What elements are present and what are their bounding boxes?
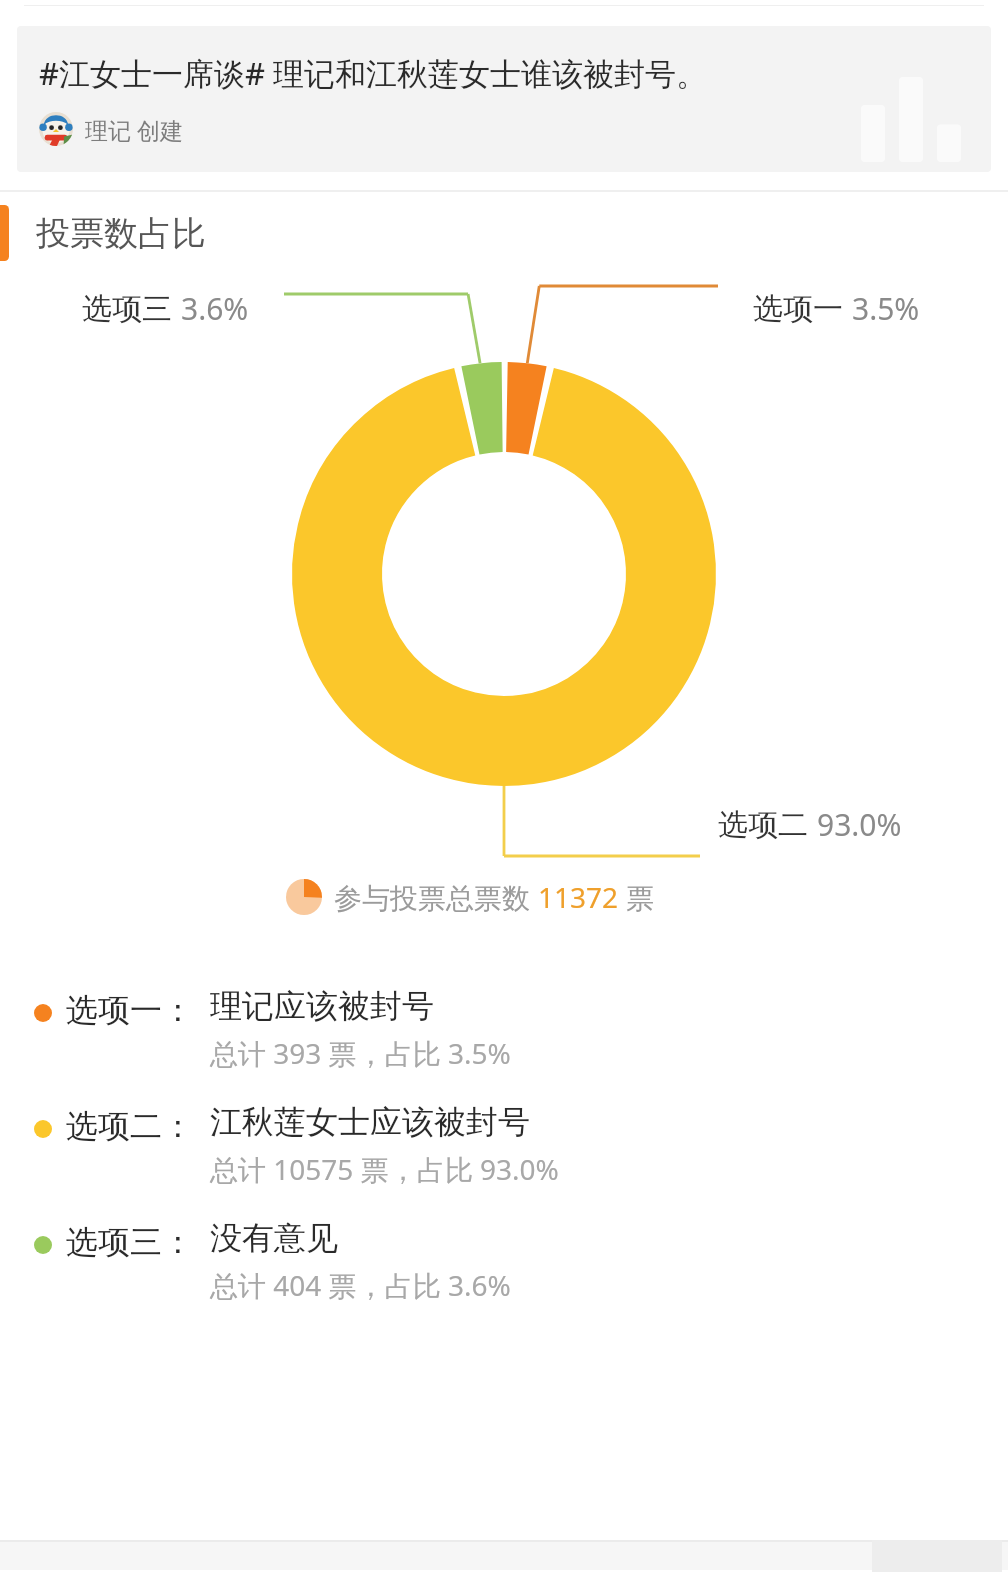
staticText: 总计 404 票，占比 3.6% bbox=[210, 1266, 511, 1304]
staticText: 选项三： bbox=[66, 1222, 194, 1262]
button[interactable]: 选项三： bbox=[0, 1214, 1008, 1308]
staticText: 选项三 bbox=[82, 290, 172, 328]
staticText: 选项二： bbox=[66, 1106, 194, 1146]
staticText: 投票数占比 bbox=[36, 212, 206, 255]
button[interactable]: Total votes bbox=[286, 878, 655, 916]
staticText: 选项一： bbox=[66, 990, 194, 1030]
button[interactable]: #江女士一席谈# 理记和江秋莲女士谁该被封号。 bbox=[17, 26, 991, 172]
staticText: #江女士一席谈# 理记和江秋莲女士谁该被封号。 bbox=[39, 52, 876, 94]
staticText: 11372 bbox=[538, 878, 619, 916]
staticText: 理记应该被封号 bbox=[210, 986, 434, 1026]
staticText: 理记 创建 bbox=[85, 114, 183, 145]
staticText: 选项一 bbox=[753, 290, 843, 328]
staticText: 3.5% bbox=[852, 288, 920, 329]
staticText: 3.6% bbox=[181, 288, 249, 329]
button[interactable]: 选项二： bbox=[0, 1098, 1008, 1192]
other: Total votes bbox=[286, 879, 322, 915]
staticText: 总计 10575 票，占比 93.0% bbox=[210, 1150, 559, 1188]
staticText: 没有意见 bbox=[210, 1218, 338, 1258]
staticText: 票 bbox=[619, 878, 655, 916]
staticText: 参与投票总票数 bbox=[334, 878, 538, 916]
staticText: 93.0% bbox=[817, 804, 902, 845]
staticText: 总计 393 票，占比 3.5% bbox=[210, 1034, 511, 1072]
staticText: 江秋莲女士应该被封号 bbox=[210, 1102, 530, 1142]
button[interactable]: 选项一： bbox=[0, 982, 1008, 1076]
staticText: 选项二 bbox=[718, 806, 808, 844]
